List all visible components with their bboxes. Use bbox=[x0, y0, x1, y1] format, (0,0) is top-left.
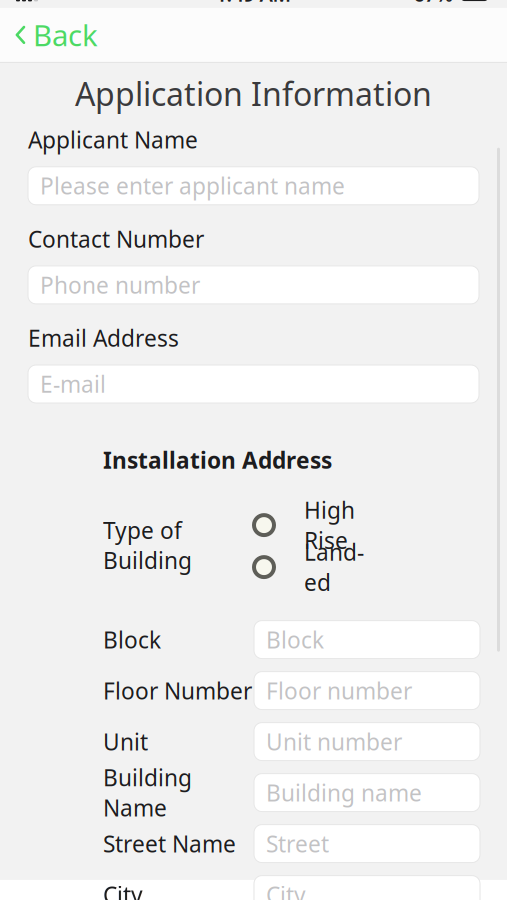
staticText: Block bbox=[266, 625, 324, 655]
staticText: Floor number bbox=[266, 676, 412, 706]
staticText: Installation Address bbox=[103, 445, 332, 475]
staticText: High Rise bbox=[304, 495, 355, 555]
staticText: Phone number bbox=[40, 270, 200, 300]
staticText: Type of Building bbox=[103, 515, 192, 575]
staticText: Application Information bbox=[75, 72, 432, 115]
staticText: Street Name bbox=[103, 829, 236, 859]
staticText: 67% bbox=[413, 0, 453, 7]
staticText: Block bbox=[103, 625, 161, 655]
staticText: 1:49 AM bbox=[215, 0, 291, 7]
staticText: City bbox=[103, 880, 143, 900]
button[interactable]: Back bbox=[0, 7, 110, 62]
staticText: E-mail bbox=[40, 369, 106, 399]
button[interactable]: Landed bbox=[254, 546, 367, 588]
staticText: Applicant Name bbox=[28, 125, 198, 155]
staticText: Email Address bbox=[28, 323, 179, 353]
staticText: City bbox=[266, 880, 306, 900]
staticText: Contact Number bbox=[28, 224, 204, 254]
staticText: Unit bbox=[103, 727, 148, 757]
staticText: Floor Number bbox=[103, 676, 252, 706]
staticText: Building name bbox=[266, 778, 422, 808]
staticText: Landed bbox=[304, 537, 364, 597]
staticText: Building Name bbox=[103, 762, 192, 823]
staticText: Unit number bbox=[266, 727, 402, 757]
staticText: Back bbox=[33, 15, 98, 54]
button[interactable]: High Rise bbox=[254, 504, 367, 546]
staticText: Street bbox=[266, 829, 329, 859]
staticText: Please enter applicant name bbox=[40, 171, 345, 201]
